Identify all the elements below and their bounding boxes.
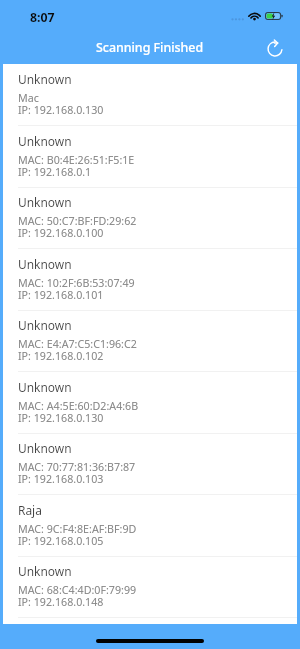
staticText: IP: 192.168.0.101 [18, 288, 104, 303]
staticText: Unknown [18, 379, 72, 395]
button[interactable]: Unknown [3, 433, 297, 495]
staticText: IP: 192.168.0.130 [18, 411, 104, 426]
staticText: Unknown [18, 71, 72, 87]
staticText: Unknown [18, 133, 72, 149]
button[interactable]: Unknown [3, 372, 297, 434]
staticText: Mac [18, 91, 39, 106]
staticText: Unknown [18, 440, 72, 456]
staticText: IP: 192.168.0.100 [18, 226, 104, 241]
staticText: MAC: A4:5E:60:D2:A4:6B [18, 399, 139, 414]
staticText: IP: 192.168.0.130 [18, 103, 104, 118]
staticText: Scanning Finished [96, 39, 204, 56]
button[interactable]: Unknown [3, 310, 297, 372]
staticText: Raja [18, 502, 42, 518]
staticText: IP: 192.168.0.105 [18, 534, 104, 549]
button[interactable]: Unknown [3, 187, 297, 249]
button[interactable]: Unknown [3, 64, 297, 126]
staticText: MAC: B0:4E:26:51:F5:1E [18, 153, 135, 168]
button[interactable]: Unknown [3, 556, 297, 618]
staticText: MAC: 70:77:81:36:B7:87 [18, 460, 136, 475]
staticText: IP: 192.168.0.102 [18, 349, 104, 364]
staticText: Unknown [18, 563, 72, 579]
staticText: Unknown [18, 256, 72, 272]
staticText: MAC: 10:2F:6B:53:07:49 [18, 276, 135, 291]
staticText: IP: 192.168.0.1 [18, 165, 92, 180]
staticText: Unknown [18, 194, 72, 210]
button[interactable]: Refresh [264, 38, 285, 59]
button[interactable]: Unknown [3, 126, 297, 188]
button[interactable]: Unknown [3, 249, 297, 311]
staticText: MAC: 50:C7:BF:FD:29:62 [18, 214, 137, 229]
staticText: MAC: 9C:F4:8E:AF:BF:9D [18, 522, 137, 537]
staticText: 8:07 [30, 9, 55, 26]
staticText: MAC: E4:A7:C5:C1:96:C2 [18, 337, 137, 352]
staticText: Unknown [18, 317, 72, 333]
staticText: MAC: 68:C4:4D:0F:79:99 [18, 583, 137, 598]
staticText: IP: 192.168.0.103 [18, 472, 104, 487]
button[interactable]: Raja [3, 495, 297, 557]
staticText: IP: 192.168.0.148 [18, 595, 104, 610]
